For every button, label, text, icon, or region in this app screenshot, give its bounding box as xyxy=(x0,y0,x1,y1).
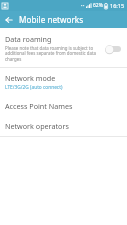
button[interactable]: Access Point Names xyxy=(0,96,127,116)
staticText: LTE/3G/2G (auto connect) xyxy=(5,84,63,91)
button[interactable]: Navigate up xyxy=(2,13,16,27)
staticText: 62% xyxy=(93,2,103,9)
button[interactable]: Data roaming xyxy=(0,30,127,67)
staticText: Network operators xyxy=(5,121,69,131)
staticText: Network mode xyxy=(5,73,56,83)
staticText: 16:15 xyxy=(110,2,125,9)
staticText: Access Point Names xyxy=(5,101,73,111)
button[interactable]: Network mode xyxy=(0,68,127,96)
button[interactable]: Network operators xyxy=(0,116,127,136)
staticText: Mobile networks xyxy=(19,14,84,25)
staticText: Data roaming xyxy=(5,34,52,44)
staticText: Please note that data roaming is subject… xyxy=(5,45,103,63)
button[interactable]: Data roaming toggle, off xyxy=(105,43,124,55)
